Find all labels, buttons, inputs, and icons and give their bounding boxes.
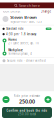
button[interactable]: Increase tip	[44, 96, 51, 103]
staticText: Toyota Prius · ABC 123	[10, 20, 42, 23]
staticText: Steven Brown	[10, 14, 37, 20]
staticText: 250.00 total	[18, 112, 36, 116]
staticText: Standard ride	[6, 27, 24, 30]
staticText: Workplace	[8, 48, 23, 52]
staticText: Home	[8, 38, 17, 41]
button[interactable]: Change	[40, 10, 51, 13]
staticText: 250.00	[19, 98, 35, 105]
staticText: On time	[47, 28, 51, 30]
staticText: Secure ride · driver verified	[7, 59, 46, 62]
staticText: Ride price estimate	[13, 94, 40, 98]
button[interactable]: Decrease tip	[2, 96, 9, 103]
staticText: 21 Lane street, ap. 10	[8, 41, 39, 45]
staticText: YOUR DRIVER	[2, 10, 20, 13]
staticText: 4:30 pm · 1.8 km away	[6, 32, 36, 36]
button[interactable]: Confirm and book the ride	[2, 107, 52, 118]
staticText: Search here	[19, 3, 40, 8]
staticText: Confirm and book the ride	[6, 109, 47, 112]
staticText: Change	[40, 10, 51, 13]
staticText: Terminus place, 4	[8, 52, 32, 55]
